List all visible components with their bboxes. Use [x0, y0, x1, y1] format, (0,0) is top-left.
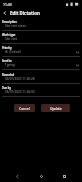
staticText: 06/01/2023 11:40:00 [5, 90, 35, 94]
button[interactable]: Work type [0, 31, 82, 44]
staticText: Site visit notes [5, 24, 26, 28]
staticText: 04/01/2023 11:40:28 [5, 77, 35, 81]
staticText: Cancel [19, 106, 30, 111]
button[interactable]: Priority [0, 44, 82, 57]
staticText: Priority [2, 46, 12, 50]
button[interactable]: Cancel [14, 104, 35, 112]
button[interactable]: Due by [0, 84, 82, 97]
staticText: Send to [2, 59, 12, 63]
button[interactable]: Back [12, 171, 23, 182]
button[interactable]: Update [41, 104, 70, 112]
button[interactable]: Recorded [0, 71, 82, 84]
staticText: Site visit [5, 37, 17, 41]
staticText: Hi (Critical) [5, 50, 21, 54]
button[interactable]: Description [0, 18, 82, 31]
staticText: 11:40 [3, 2, 12, 7]
staticText: Update [50, 106, 62, 111]
button[interactable]: Send to [0, 57, 82, 70]
staticText: Description [2, 20, 17, 24]
button[interactable]: Back [0, 8, 10, 18]
staticText: Due by [2, 86, 11, 90]
staticText: Recorded [2, 73, 15, 77]
button[interactable]: Home [36, 171, 47, 182]
staticText: Typing [5, 63, 15, 67]
staticText: Work type [2, 33, 16, 37]
staticText: Edit Dictation [10, 10, 40, 16]
button[interactable]: Recents [59, 171, 70, 182]
